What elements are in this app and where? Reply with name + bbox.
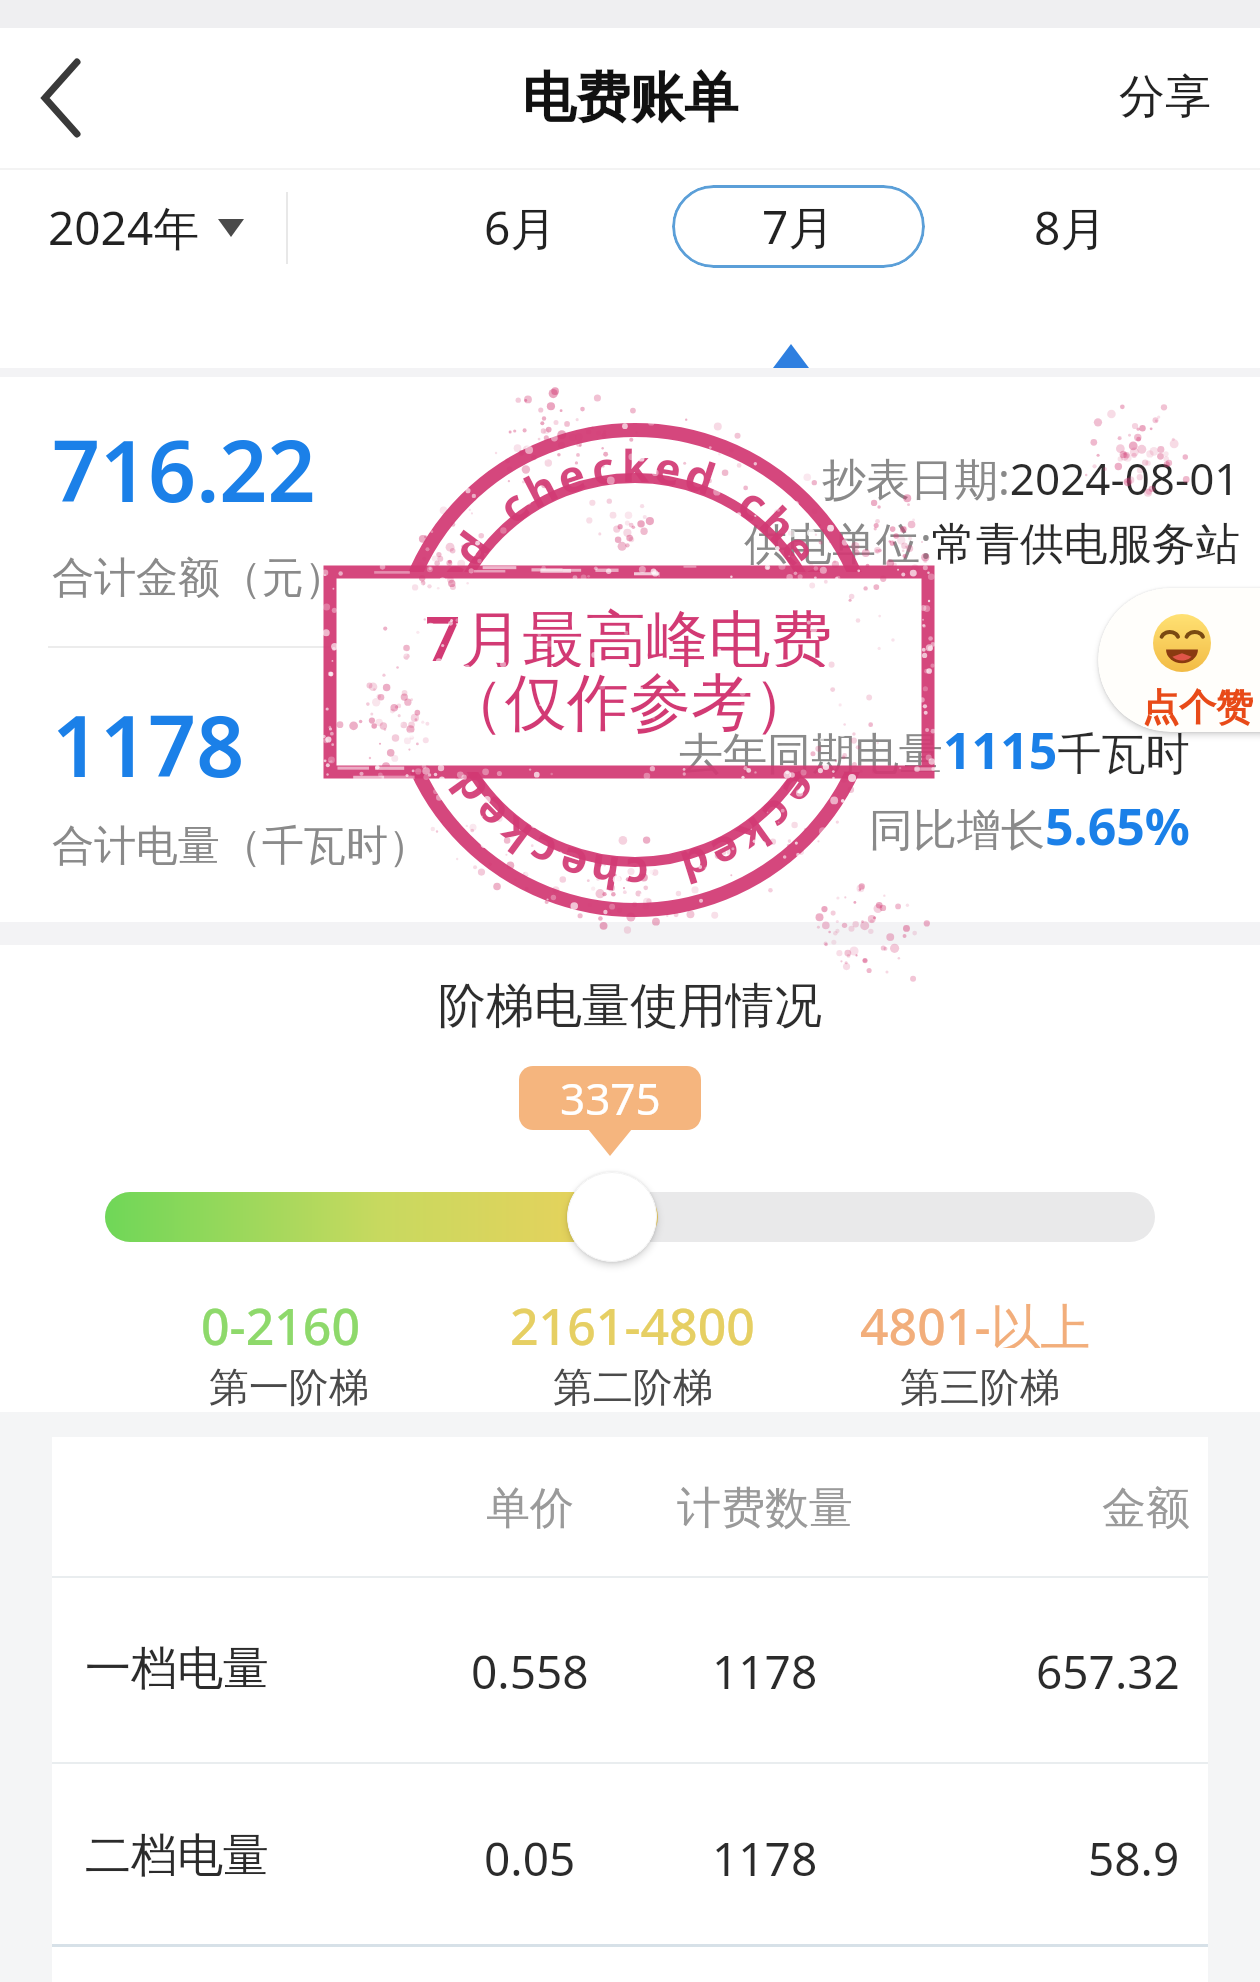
staticText: 4801-以上 (860, 1292, 1091, 1348)
button[interactable]: 点个赞 (1098, 588, 1260, 732)
button[interactable]: 2024年 (48, 190, 244, 265)
staticText: 点个赞 (1142, 684, 1253, 728)
staticText: 7月最高峰电费 (425, 595, 833, 667)
staticText: 合计电量（千瓦时） (52, 820, 430, 873)
staticText: 一档电量 (85, 1640, 269, 1696)
staticText: 单价 (486, 1481, 574, 1536)
staticText: 0.558 (471, 1640, 589, 1696)
staticText: 0-2160 (201, 1292, 361, 1348)
staticText: 2024年 (48, 196, 200, 259)
staticText: 第一阶梯 (209, 1362, 369, 1412)
staticText: 2161-4800 (510, 1292, 755, 1348)
button[interactable]: 6月 (455, 190, 585, 265)
button[interactable] (567, 1172, 657, 1262)
staticText: 同比增长5.65% (869, 792, 1190, 854)
staticText: 8月 (1034, 196, 1107, 259)
button[interactable] (25, 50, 95, 145)
staticText: 1178 (712, 1640, 818, 1696)
staticText: 供电单位:常青供电服务站 (744, 512, 1240, 568)
staticText: 合计金额（元） (52, 552, 346, 605)
staticText: 0.05 (484, 1827, 576, 1883)
staticText: 金额 (1102, 1481, 1190, 1536)
staticText: 58.9 (1088, 1827, 1180, 1883)
staticText: 3375 (560, 1068, 661, 1128)
staticText: 抄表日期:2024-08-01 (822, 448, 1240, 504)
staticText: 二档电量 (85, 1827, 269, 1883)
staticText: 1178 (712, 1827, 818, 1883)
staticText: 第三阶梯 (900, 1362, 1060, 1412)
button[interactable]: 7月 (672, 185, 925, 268)
staticText: （仅作参考） (443, 664, 815, 736)
button[interactable] (52, 1580, 1208, 1762)
staticText: 计费数量 (677, 1481, 853, 1536)
staticText: 电费账单 (522, 64, 738, 132)
button[interactable]: 分享 (1090, 62, 1240, 132)
staticText: 去年同期电量1115千瓦时 (679, 716, 1190, 778)
staticText: 阶梯电量使用情况 (438, 976, 822, 1036)
staticText: 1178 (52, 687, 245, 792)
staticText: 6月 (484, 196, 557, 259)
staticText: 657.32 (1036, 1640, 1180, 1696)
staticText: 分享 (1119, 68, 1211, 126)
staticText: 716.22 (52, 412, 316, 517)
staticText: 第二阶梯 (553, 1362, 713, 1412)
staticText: 7月 (762, 195, 835, 258)
button[interactable]: 8月 (1005, 190, 1135, 265)
